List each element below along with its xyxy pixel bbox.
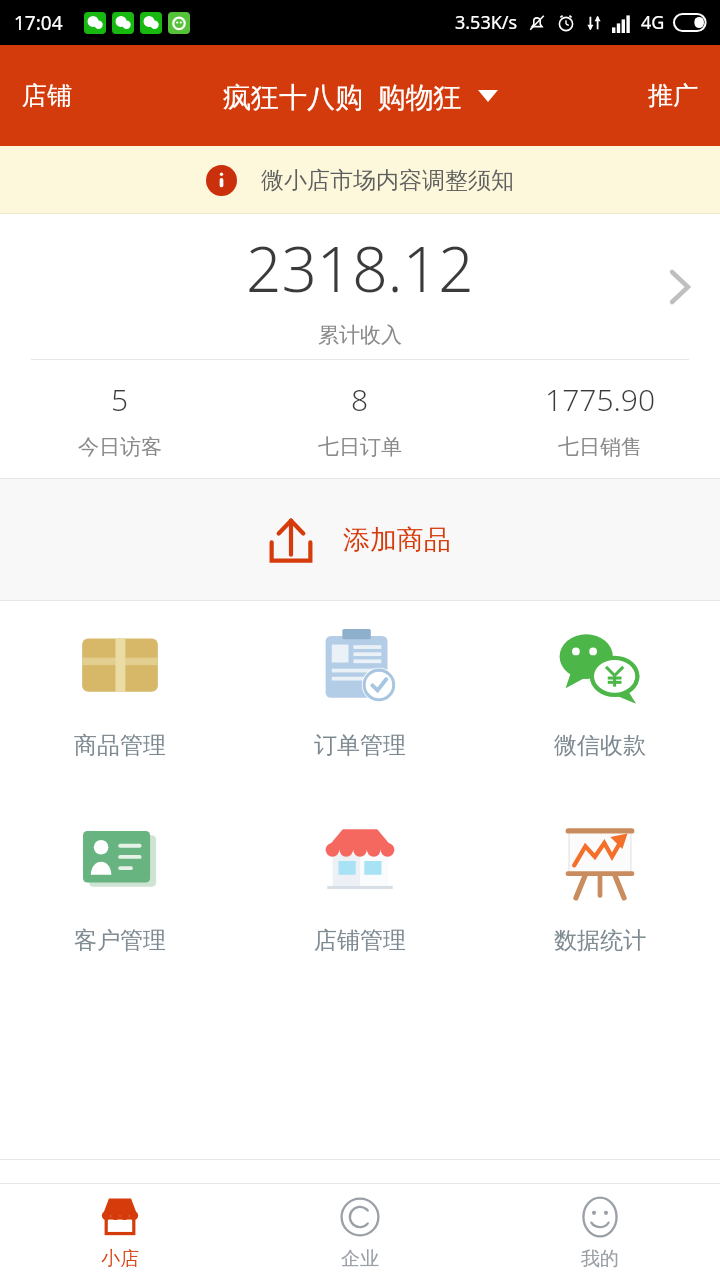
staticText: 添加商品 — [343, 523, 451, 557]
staticText: 客户管理 — [74, 926, 166, 955]
staticText: 商品管理 — [74, 731, 166, 760]
button[interactable]: 数据统计 — [480, 818, 720, 955]
button[interactable]: 订单管理 — [240, 623, 480, 760]
button[interactable]: 我的 — [480, 1184, 720, 1280]
staticText: 七日销售 — [558, 434, 642, 460]
staticText: 七日订单 — [318, 434, 402, 460]
staticText: 今日访客 — [78, 434, 162, 460]
button[interactable]: 2318.12 — [0, 214, 720, 359]
staticText: 订单管理 — [314, 731, 406, 760]
button[interactable]: 店铺 — [0, 70, 86, 121]
staticText: 我的 — [581, 1247, 619, 1271]
staticText: 微小店市场内容调整须知 — [261, 166, 514, 195]
button[interactable]: 5 — [0, 360, 240, 478]
staticText: 17:04 — [14, 10, 63, 36]
button[interactable]: 微小店市场内容调整须知 — [0, 146, 720, 214]
button[interactable]: 微信收款 — [480, 623, 720, 760]
button[interactable]: 小店 — [0, 1184, 240, 1280]
staticText: 4G — [641, 10, 665, 35]
button[interactable]: 店铺管理 — [240, 818, 480, 955]
staticText: 小店 — [101, 1247, 139, 1271]
button[interactable]: 企业 — [240, 1184, 480, 1280]
staticText: 企业 — [341, 1247, 379, 1271]
staticText: 3.53K/s — [455, 10, 518, 35]
staticText: 累计收入 — [318, 322, 402, 348]
button[interactable]: 疯狂十八购 购物狂 — [215, 69, 506, 123]
staticText: 数据统计 — [554, 926, 646, 955]
button[interactable]: 8 — [240, 360, 480, 478]
staticText: 微信收款 — [554, 731, 646, 760]
button[interactable]: 商品管理 — [0, 623, 240, 760]
staticText: 疯狂十八购 购物狂 — [223, 77, 462, 115]
staticText: 5 — [111, 379, 129, 420]
staticText: 推广 — [648, 80, 698, 111]
staticText: 1775.90 — [545, 379, 656, 420]
staticText: 店铺管理 — [314, 926, 406, 955]
staticText: 店铺 — [22, 80, 72, 111]
button[interactable]: 1775.90 — [480, 360, 720, 478]
staticText: 8 — [351, 379, 369, 420]
staticText: 2318.12 — [246, 226, 474, 310]
button[interactable]: 推广 — [634, 70, 720, 121]
button[interactable]: 客户管理 — [0, 818, 240, 955]
button[interactable]: 添加商品 — [0, 479, 720, 601]
